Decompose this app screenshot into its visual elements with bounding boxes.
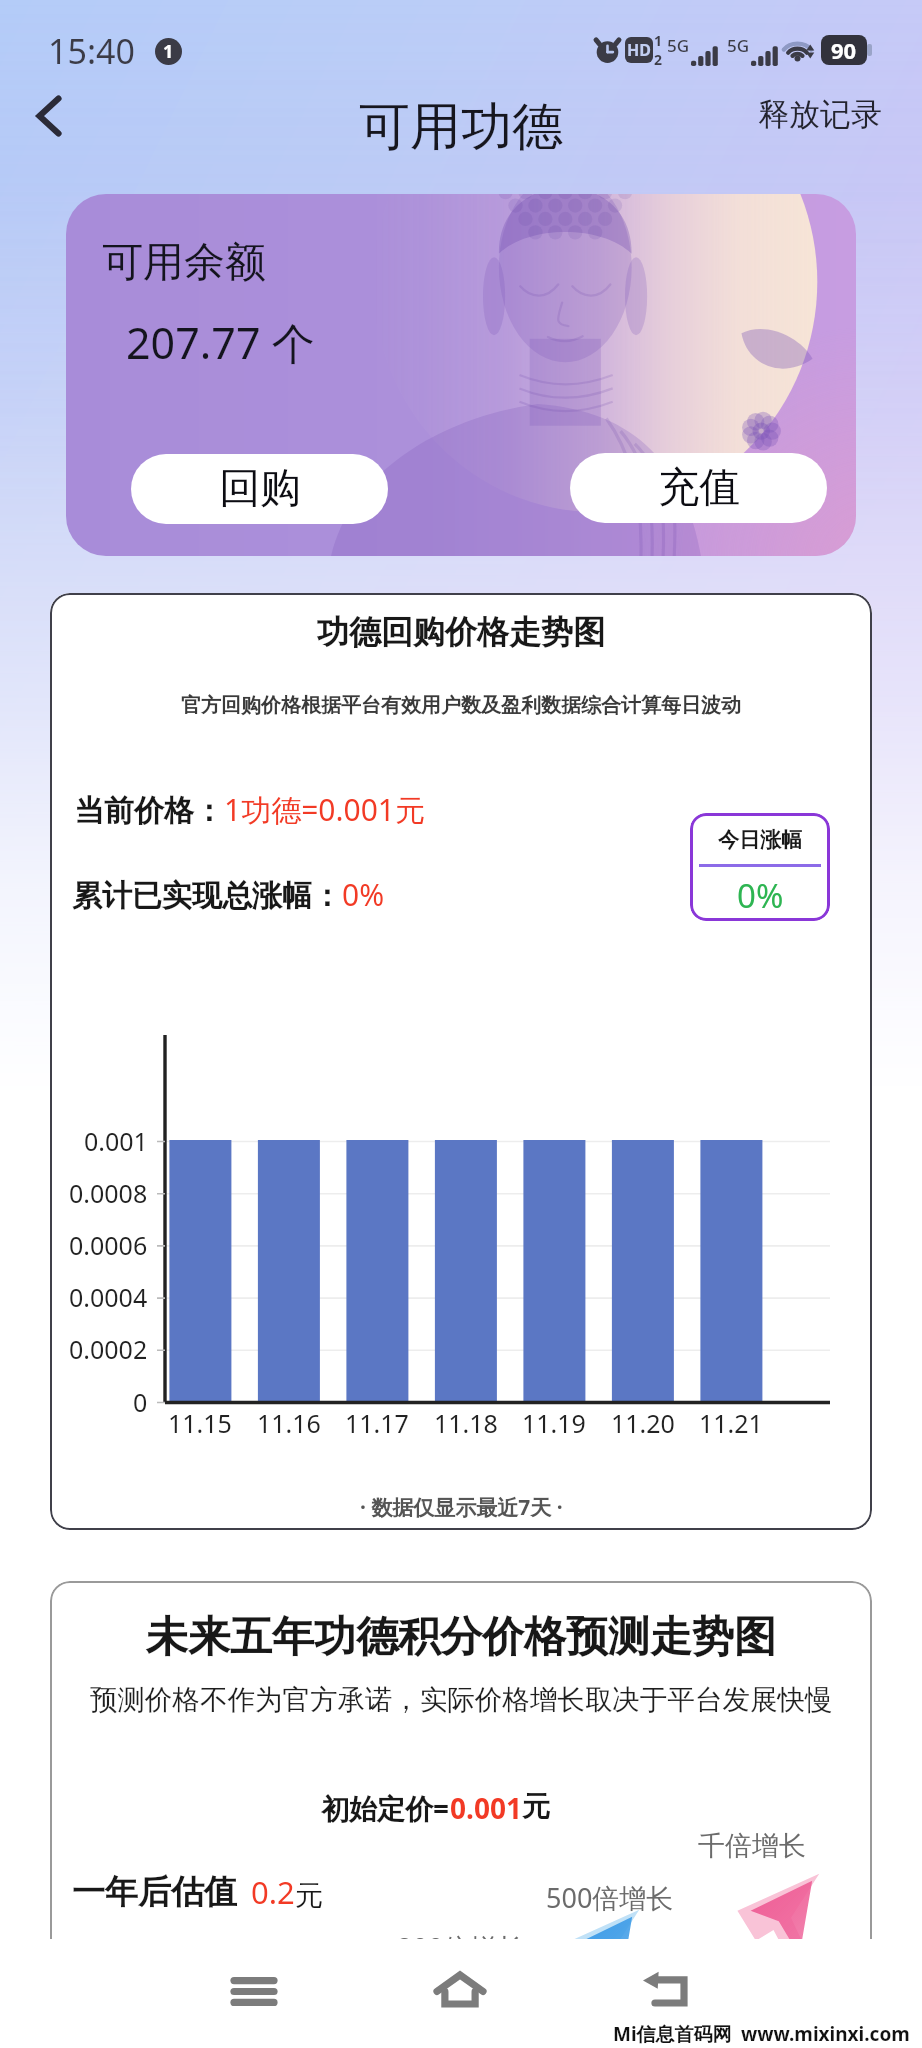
staticText: 可用余额 bbox=[102, 237, 266, 289]
staticText: 11.15 bbox=[168, 1406, 232, 1440]
staticText: 0.001 bbox=[84, 1124, 148, 1158]
staticText: www.mixinxi.com bbox=[741, 2021, 910, 2047]
staticText: 0.001 bbox=[450, 1789, 522, 1827]
staticText: HD bbox=[627, 39, 651, 61]
button[interactable]: Home bbox=[410, 1953, 510, 2025]
staticText: 0.0006 bbox=[69, 1228, 148, 1262]
staticText: 预测价格不作为官方承诺，实际价格增长取决于平台发展快慢 bbox=[90, 1683, 833, 1718]
staticText: 11.19 bbox=[522, 1406, 586, 1440]
button[interactable]: Recent apps bbox=[204, 1955, 304, 2027]
staticText: 11.20 bbox=[611, 1406, 675, 1440]
staticText: 0.0002 bbox=[69, 1332, 148, 1366]
staticText: 元 bbox=[295, 1878, 323, 1913]
button[interactable]: Back bbox=[616, 1953, 716, 2025]
staticText: 累计已实现总涨幅： bbox=[72, 877, 342, 915]
staticText: 千倍增长 bbox=[698, 1829, 806, 1863]
staticText: 11.21 bbox=[699, 1406, 763, 1440]
staticText: 功德回购价格走势图 bbox=[317, 612, 605, 652]
staticText: 初始定价= bbox=[321, 1789, 450, 1827]
staticText: 15:40 bbox=[48, 28, 135, 74]
staticText: 0.2 bbox=[251, 1871, 295, 1913]
staticText: 500倍增长 bbox=[546, 1879, 674, 1916]
staticText: 0.0008 bbox=[69, 1176, 148, 1210]
staticText: 一年后估值 bbox=[72, 1871, 237, 1913]
staticText: 90 bbox=[831, 35, 857, 65]
staticText: 5G bbox=[667, 34, 690, 57]
staticText: 1 bbox=[163, 39, 174, 64]
staticText: 充值 bbox=[658, 462, 740, 514]
staticText: 200倍增长 bbox=[397, 1929, 525, 1966]
staticText: 2 bbox=[654, 50, 663, 69]
staticText: 0 bbox=[133, 1385, 148, 1419]
button[interactable]: 回购 bbox=[131, 454, 388, 524]
staticText: 官方回购价格根据平台有效用户数及盈利数据综合计算每日波动 bbox=[181, 693, 741, 718]
button[interactable]: 充值 bbox=[570, 453, 827, 523]
staticText: 今日涨幅 bbox=[718, 827, 802, 853]
staticText: 5G bbox=[727, 34, 750, 57]
staticText: 11.17 bbox=[345, 1406, 409, 1440]
button[interactable]: 释放记录 bbox=[748, 87, 892, 142]
staticText: · 数据仅显示最近7天 · bbox=[360, 1493, 563, 1522]
staticText: 回购 bbox=[219, 463, 301, 515]
button[interactable]: Back bbox=[16, 83, 82, 149]
staticText: 207.77 个 bbox=[126, 313, 315, 372]
staticText: 0% bbox=[737, 873, 784, 918]
staticText: 可用功德 bbox=[359, 95, 563, 159]
staticText: 0% bbox=[342, 874, 385, 915]
staticText: 11.18 bbox=[434, 1406, 498, 1440]
staticText: 1 bbox=[654, 31, 663, 50]
staticText: 未来五年功德积分价格预测走势图 bbox=[146, 1611, 776, 1664]
staticText: Mi信息首码网 bbox=[613, 2021, 732, 2047]
staticText: 11.16 bbox=[257, 1406, 321, 1440]
staticText: 释放记录 bbox=[758, 95, 882, 134]
staticText: 0.0004 bbox=[69, 1280, 148, 1314]
staticText: 元 bbox=[522, 1789, 550, 1824]
staticText: 1功德=0.001元 bbox=[224, 789, 425, 830]
staticText: 当前价格： bbox=[74, 792, 224, 830]
